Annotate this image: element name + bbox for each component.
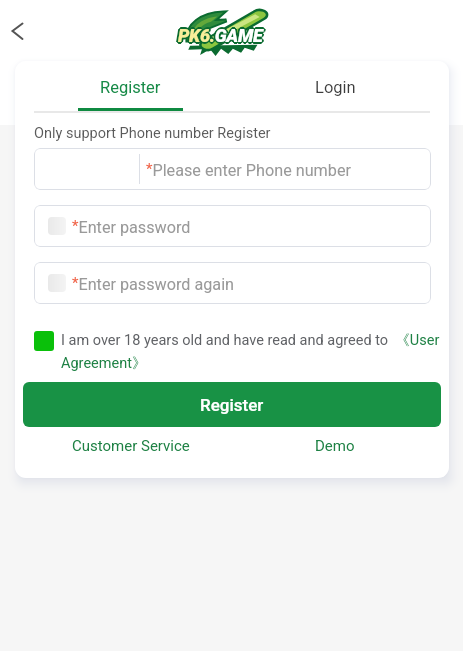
staticText: Customer Service <box>72 437 190 455</box>
staticText: PK6.GAME <box>179 24 264 45</box>
staticText: Register <box>100 78 161 97</box>
button[interactable]: Register <box>23 382 441 427</box>
staticText: *Please enter Phone number <box>146 160 351 180</box>
staticText: *Enter password again <box>72 274 235 294</box>
staticText: Only support Phone number Register <box>34 125 271 142</box>
staticText: PK6.GAME <box>178 27 263 48</box>
staticText: Register <box>200 395 264 415</box>
staticText: PK6.GAME <box>177 24 262 45</box>
button[interactable]: Login <box>232 61 430 113</box>
staticText: PK6.GAME <box>178 25 263 46</box>
button[interactable]: Customer Service <box>61 434 200 458</box>
staticText: Demo <box>315 437 355 455</box>
button[interactable]: I am over 18 years old and have read and… <box>34 331 446 373</box>
staticText: PK6.GAME <box>180 25 265 46</box>
staticText: Login <box>315 78 356 97</box>
button[interactable]: *Enter password <box>34 205 431 247</box>
staticText: I am over 18 years old and have read and… <box>61 331 440 373</box>
staticText: *Enter password <box>72 217 191 237</box>
staticText: PK6.GAME <box>178 23 263 44</box>
staticText: PK6.GAME <box>177 26 262 47</box>
button[interactable]: Demo <box>265 434 404 458</box>
staticText: PK6.GAME <box>176 25 261 46</box>
staticText: PK6.GAME <box>179 26 264 47</box>
button[interactable]: Register <box>34 61 232 113</box>
button[interactable]: *Enter password again <box>34 262 431 304</box>
button[interactable]: Back <box>1 14 35 48</box>
button[interactable]: *Please enter Phone number <box>34 148 431 190</box>
